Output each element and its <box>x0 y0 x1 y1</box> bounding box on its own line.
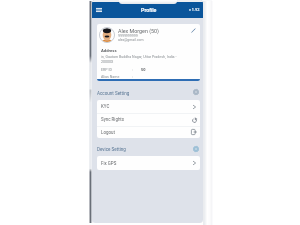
staticText: ERP ID <box>101 68 112 72</box>
button[interactable]: Device Setting options <box>193 146 199 152</box>
staticText: Profile <box>141 7 157 13</box>
button[interactable]: Logout <box>97 126 200 138</box>
button[interactable]: KYC <box>97 100 200 113</box>
staticText: : <box>132 75 133 79</box>
button[interactable]: Open navigation menu <box>94 5 104 15</box>
staticText: v 1.92 <box>189 7 200 12</box>
button[interactable]: Edit profile <box>189 26 197 34</box>
staticText: Address <box>101 48 117 53</box>
button[interactable]: Sync Rights <box>97 113 200 126</box>
staticText: alex@gmail.com <box>118 38 144 42</box>
staticText: KYC <box>101 104 110 109</box>
button[interactable]: Account Setting <box>97 91 130 96</box>
staticText: Logout <box>101 130 115 135</box>
staticText: in, Gautam Buddha Nagar, Uttar Pradesh, … <box>101 55 177 59</box>
staticText: Sync Rights <box>101 117 125 122</box>
button[interactable]: Alex Morgen (50) <box>97 24 200 81</box>
button[interactable]: Account Setting options <box>193 89 199 95</box>
staticText: 50 <box>141 67 146 72</box>
staticText: Fix GPS <box>101 161 117 166</box>
button[interactable]: Device Setting <box>97 147 126 152</box>
staticText: Alias Name <box>101 75 120 79</box>
staticText: Alex Morgen (50) <box>118 28 159 34</box>
staticText: : <box>132 68 133 72</box>
button[interactable]: Fix GPS <box>97 156 200 170</box>
staticText: 9999999999 <box>118 34 138 38</box>
staticText: 20000X <box>101 60 114 64</box>
